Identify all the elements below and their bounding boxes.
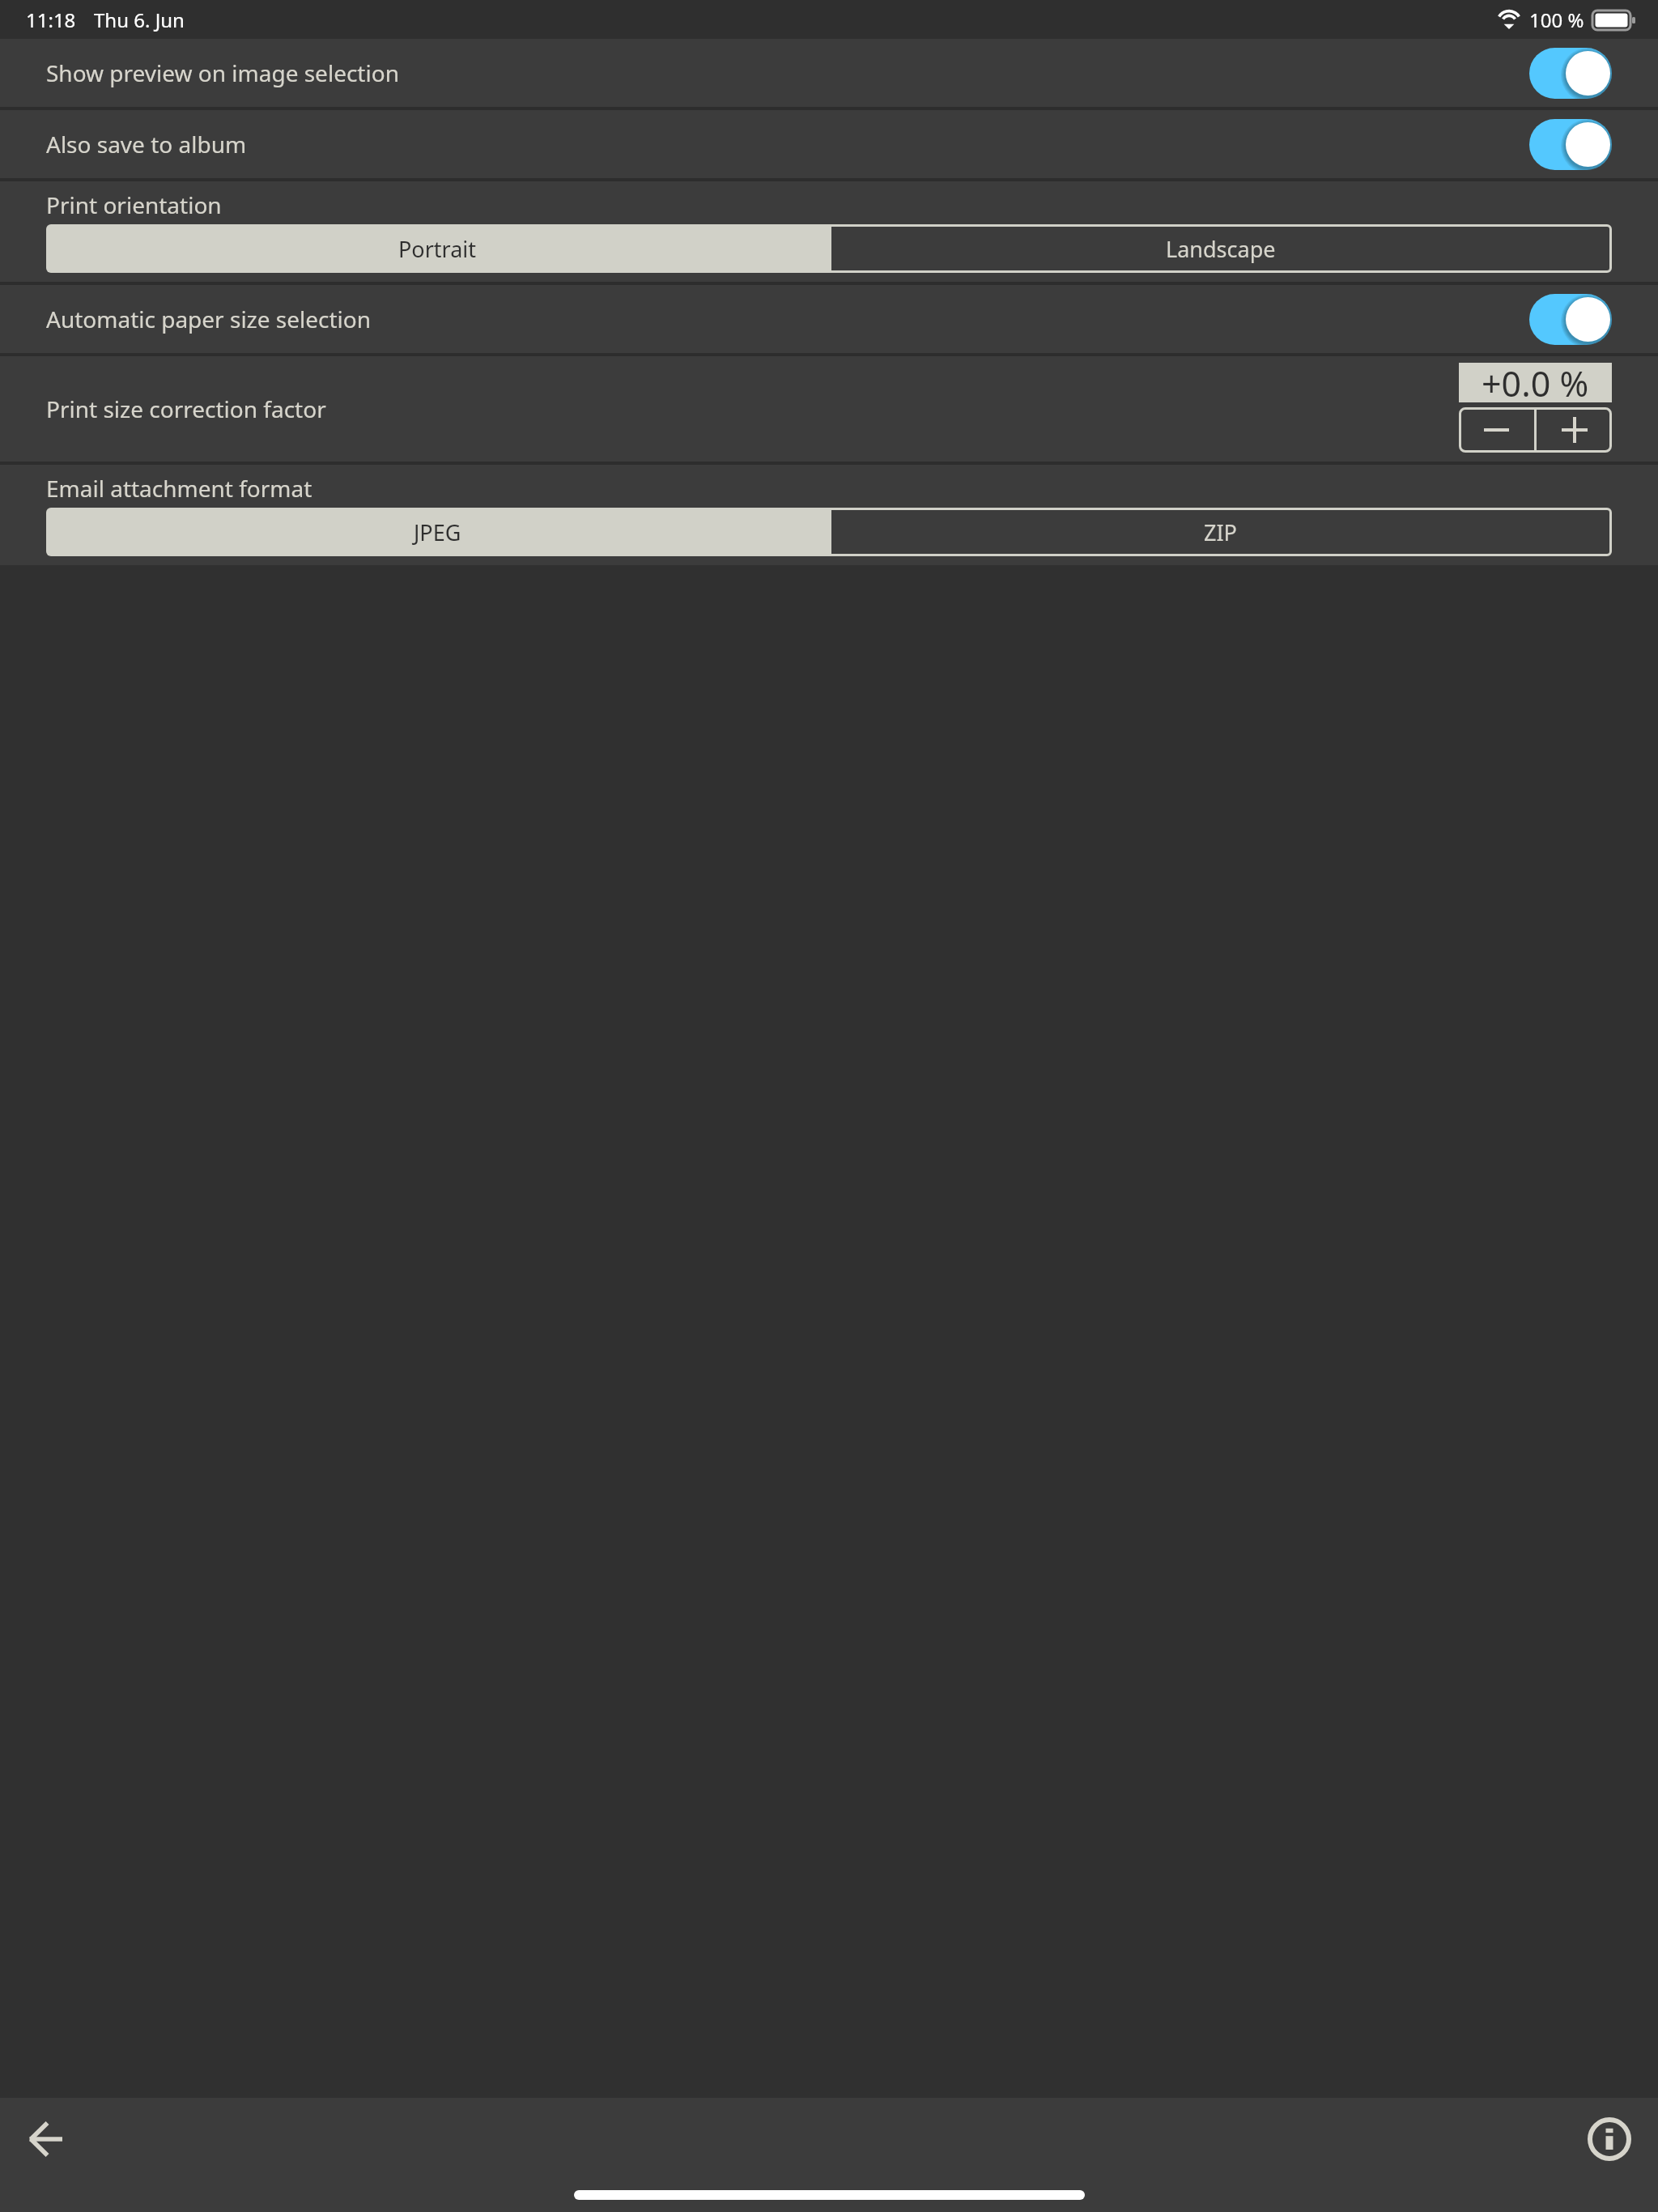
staticText: +0.0 % <box>1482 359 1589 399</box>
button[interactable]: Back <box>16 2110 74 2168</box>
staticText: Automatic paper size selection <box>46 304 372 334</box>
button[interactable]: Portrait <box>46 224 829 273</box>
staticText: Email attachment format <box>46 473 312 504</box>
button[interactable]: JPEG <box>46 508 829 556</box>
staticText: Show preview on image selection <box>46 57 399 88</box>
staticText: Portrait <box>398 234 477 264</box>
button[interactable]: Show preview on image selection <box>0 39 1658 107</box>
button[interactable]: Also save to album <box>0 110 1658 178</box>
button[interactable]: Toggle <box>1529 48 1612 99</box>
button[interactable]: Toggle <box>1529 294 1612 345</box>
staticText: 100 % <box>1529 6 1584 33</box>
button[interactable]: ZIP <box>829 508 1612 556</box>
button[interactable]: Increase <box>1537 407 1612 453</box>
staticText: 11:18 <box>26 6 76 33</box>
staticText: Landscape <box>1166 234 1276 264</box>
button[interactable]: Decrease <box>1459 407 1534 453</box>
button[interactable]: Info <box>1580 2110 1639 2168</box>
button[interactable]: Automatic paper size selection <box>0 285 1658 353</box>
staticText: JPEG <box>414 517 461 547</box>
staticText: ZIP <box>1204 517 1237 547</box>
staticText: Also save to album <box>46 129 247 160</box>
staticText: Print size correction factor <box>46 393 326 424</box>
staticText: Print orientation <box>46 189 222 220</box>
staticText: Thu 6. Jun <box>94 6 185 33</box>
button[interactable]: Toggle <box>1529 119 1612 170</box>
button[interactable]: Landscape <box>829 224 1612 273</box>
